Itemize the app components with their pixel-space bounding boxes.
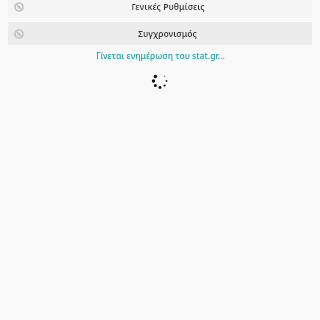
other: Blocked (14, 2, 24, 12)
staticText: Γίνεται ενημέρωση του stat.gr... (96, 50, 225, 62)
button[interactable]: Blocked (8, 0, 312, 18)
staticText: Γενικές Ρυθμίσεις (131, 1, 205, 13)
other: Blocked (14, 29, 24, 39)
button[interactable]: Blocked (8, 22, 312, 45)
staticText: Συγχρονισμός (138, 28, 197, 40)
